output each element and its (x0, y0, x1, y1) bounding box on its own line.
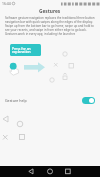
staticText: Gestures (39, 8, 61, 15)
staticText: Gesture help (5, 98, 27, 103)
button[interactable]: Gesture help toggle (82, 97, 95, 104)
staticText: Press for an explanation (12, 46, 31, 54)
staticText: 16:44 (2, 1, 11, 6)
button[interactable]: Press for an explanation (10, 44, 41, 56)
staticText: Software gesture navigation replaces the… (5, 16, 95, 36)
